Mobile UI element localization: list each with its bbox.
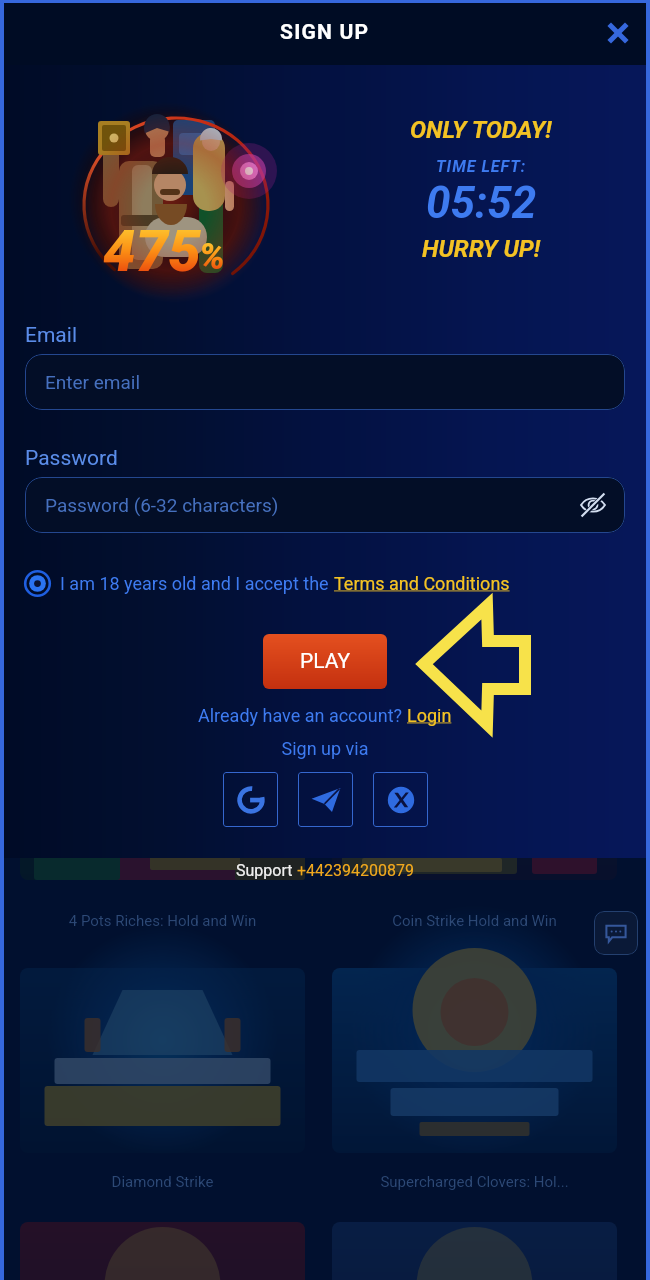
staticText: Coin Strike Hold and Win [332,912,617,930]
button[interactable]: PLAY [263,634,387,689]
staticText: 475 [103,217,201,285]
staticText: Password (6-32 characters) [45,494,279,516]
staticText: ONLY TODAY! [410,116,552,144]
button[interactable]: Support chat [594,911,638,955]
staticText: 05:52 [426,177,537,229]
staticText: Email [25,323,77,348]
staticText: Enter email [45,371,141,393]
staticText: Password [25,446,118,471]
button[interactable]: Show password [576,488,610,522]
staticText: Supercharged Clovers: Hol... [332,1173,617,1191]
button[interactable]: Sign up with Google [223,772,278,827]
staticText: Support [236,861,297,880]
staticText: Sign up via [0,738,650,759]
staticText: SIGN UP [280,20,370,45]
staticText: % [199,236,225,278]
button[interactable]: Enter email [25,354,625,410]
staticText: 4 Pots Riches: Hold and Win [20,912,305,930]
button[interactable]: Password (6-32 characters) [25,477,625,533]
button[interactable]: +442394200879 [297,861,414,880]
staticText: TIME LEFT: [436,157,527,176]
button[interactable]: Sign up with Telegram [298,772,353,827]
staticText: Diamond Strike [20,1173,305,1191]
staticText: Already have an account? [198,705,407,726]
staticText: PLAY [300,649,351,674]
staticText: HURRY UP! [422,235,541,263]
button[interactable]: I am 18 years old and I accept the [24,570,510,597]
button[interactable]: Sign up with X [373,772,428,827]
button[interactable]: Login [407,705,452,726]
button[interactable]: Close [597,12,639,54]
button[interactable]: Terms and Conditions [334,573,510,594]
staticText: I am 18 years old and I accept the [60,573,334,594]
